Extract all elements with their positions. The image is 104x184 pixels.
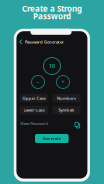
staticText: Password Generator (25, 39, 64, 44)
staticText: Lower Case (23, 107, 44, 113)
button[interactable]: Password length 10 (43, 57, 60, 74)
button[interactable]: Generate (35, 134, 69, 143)
staticText: Create a Strong (22, 3, 82, 14)
staticText: – (36, 78, 39, 86)
button[interactable]: Decrease length (31, 75, 44, 88)
button[interactable]: Symbols (52, 106, 80, 114)
button[interactable]: Copy password (74, 121, 79, 127)
staticText: Upper Case (22, 96, 45, 101)
staticText: Generate (43, 136, 61, 141)
staticText: 10 (49, 62, 55, 70)
staticText: + (61, 78, 64, 86)
button[interactable]: Increase length (56, 75, 69, 88)
staticText: Symbols (58, 107, 74, 113)
staticText: Password (33, 11, 71, 21)
button[interactable]: Numbers (52, 94, 80, 102)
button[interactable]: Back (18, 39, 23, 45)
button[interactable]: Upper Case (20, 94, 48, 102)
button[interactable]: Lower Case (20, 106, 48, 114)
staticText: Show Password (20, 121, 47, 126)
staticText: Numbers (57, 96, 76, 101)
